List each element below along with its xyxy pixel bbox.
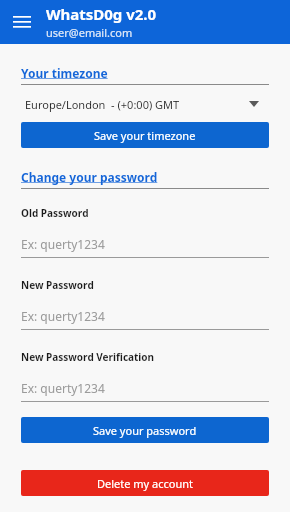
staticText: Europe/London - (+0:00) GMT: [25, 97, 180, 112]
button[interactable]: Ex: querty1234: [21, 375, 269, 402]
staticText: New Password Verification: [21, 350, 155, 364]
staticText: Save your password: [93, 423, 197, 438]
staticText: WhatsD0g v2.0: [46, 4, 157, 24]
button[interactable]: Save your timezone: [21, 122, 269, 148]
button[interactable]: Ex: querty1234: [21, 303, 269, 330]
button[interactable]: Delete my account: [21, 470, 269, 496]
button[interactable]: Ex: querty1234: [21, 231, 269, 258]
staticText: Save your timezone: [94, 128, 196, 143]
button[interactable]: Save your password: [21, 417, 269, 443]
staticText: Old Password: [21, 206, 89, 220]
staticText: Ex: querty1234: [21, 308, 105, 324]
staticText: New Password: [21, 278, 94, 292]
staticText: Your timezone: [21, 65, 108, 81]
staticText: Change your password: [21, 169, 158, 185]
staticText: Ex: querty1234: [21, 236, 105, 252]
staticText: Ex: querty1234: [21, 380, 105, 396]
button[interactable]: Open navigation menu: [6, 6, 38, 38]
staticText: user@email.com: [46, 25, 133, 40]
button[interactable]: Select timezone: [21, 93, 269, 115]
staticText: Delete my account: [97, 476, 194, 491]
